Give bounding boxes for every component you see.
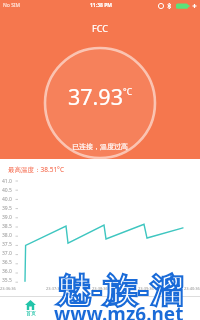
staticText: 40.5	[2, 187, 12, 194]
staticText: 35.5	[2, 277, 12, 284]
staticText: 首页	[26, 310, 36, 316]
staticText: 23:39:36	[138, 286, 154, 291]
staticText: FCC	[92, 22, 108, 34]
staticText: 37.0	[2, 250, 12, 257]
staticText: 38.5	[2, 223, 12, 230]
staticText: 11:38 PM	[90, 2, 112, 9]
staticText: www.mz6.net	[54, 301, 184, 320]
staticText: 37.93	[68, 82, 123, 111]
staticText: 最高温度：38.51°C	[8, 165, 65, 174]
staticText: 41.0	[2, 178, 12, 185]
staticText: No SIM	[3, 2, 21, 9]
staticText: 36.0	[2, 268, 12, 275]
staticText: 23:38:36	[92, 286, 108, 291]
staticText: 23:36:36	[0, 286, 16, 291]
staticText: 魅-族-溜	[57, 267, 185, 312]
staticText: 39.5	[2, 205, 12, 212]
staticText: 23:40:36	[184, 286, 200, 291]
staticText: °C	[123, 86, 133, 98]
staticText: 36.5	[2, 259, 12, 266]
staticText: 37.5	[2, 241, 12, 248]
staticText: 38.0	[2, 232, 12, 239]
staticText: 已连接，温度过高	[72, 142, 128, 151]
staticText: 魅-族-溜	[57, 267, 185, 312]
staticText: 23:37:36	[46, 286, 62, 291]
staticText: 39.0	[2, 214, 12, 221]
staticText: 40.0	[2, 196, 12, 203]
button[interactable]: 首页	[25, 300, 36, 316]
